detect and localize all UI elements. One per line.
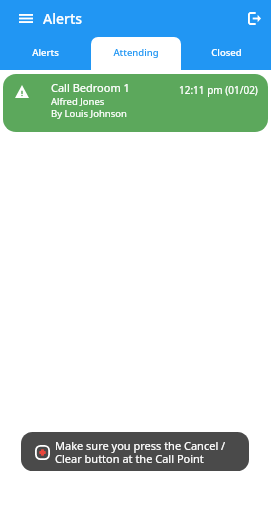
staticText: Closed [211,46,242,59]
staticText: By Louis Johnson [51,107,127,120]
staticText: Call Bedroom 1 [51,80,130,95]
staticText: Make sure you press the Cancel / Clear b… [55,438,226,466]
button[interactable]: Closed [181,37,271,70]
button[interactable]: Attending [91,37,181,70]
button[interactable]: Alerts [0,37,91,70]
button[interactable]: Open navigation menu [8,0,44,37]
staticText: Alerts [32,46,59,59]
button[interactable]: Log out [237,0,271,37]
staticText: Alerts [43,9,83,28]
button[interactable]: Call Bedroom 1 [3,74,268,132]
staticText: Attending [113,46,159,59]
staticText: Alfred Jones [51,95,105,108]
button[interactable]: Make sure you press the Cancel / Clear b… [21,432,249,471]
staticText: 12:11 pm (01/02) [179,83,258,97]
